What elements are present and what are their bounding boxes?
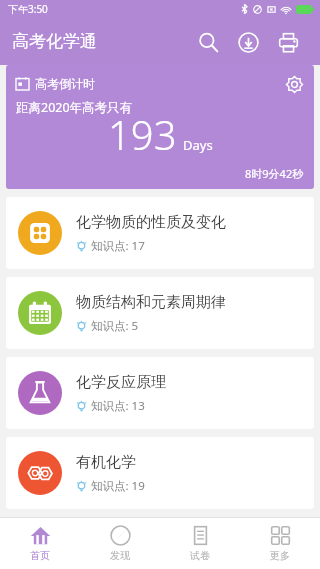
staticText: 高考倒计时	[35, 76, 95, 91]
button[interactable]: 更多	[240, 517, 320, 569]
staticText: 物质结构和元素周期律	[76, 293, 226, 312]
staticText: 有机化学	[76, 453, 136, 472]
button[interactable]: 首页	[0, 517, 80, 569]
staticText: 试卷	[190, 549, 210, 562]
button[interactable]: 发现	[80, 517, 160, 569]
staticText: Days	[183, 136, 213, 154]
button[interactable]: Download	[228, 22, 268, 62]
staticText: 知识点: 19	[91, 478, 145, 494]
staticText: 8时9分42秒	[245, 166, 304, 181]
staticText: 知识点: 13	[91, 398, 145, 414]
button[interactable]: 有机化学	[6, 437, 314, 509]
button[interactable]: Settings	[282, 72, 306, 96]
button[interactable]: 物质结构和元素周期律	[6, 277, 314, 349]
button[interactable]: 试卷	[160, 517, 240, 569]
staticText: 知识点: 17	[91, 238, 145, 254]
staticText: 化学物质的性质及变化	[76, 213, 226, 232]
button[interactable]: 化学反应原理	[6, 357, 314, 429]
staticText: 距离2020年高考只有	[16, 99, 133, 116]
button[interactable]: 化学物质的性质及变化	[6, 197, 314, 269]
button[interactable]: Search	[188, 22, 228, 62]
button[interactable]: 高考倒计时	[6, 65, 314, 189]
staticText: 化学反应原理	[76, 373, 166, 392]
button[interactable]: Print	[268, 22, 308, 62]
staticText: 更多	[270, 549, 290, 562]
staticText: 知识点: 5	[91, 318, 139, 334]
staticText: 下午3:50	[8, 2, 48, 16]
staticText: 发现	[110, 549, 130, 562]
staticText: 高考化学通	[12, 31, 97, 52]
staticText: 首页	[30, 549, 50, 562]
staticText: 193	[108, 107, 177, 161]
